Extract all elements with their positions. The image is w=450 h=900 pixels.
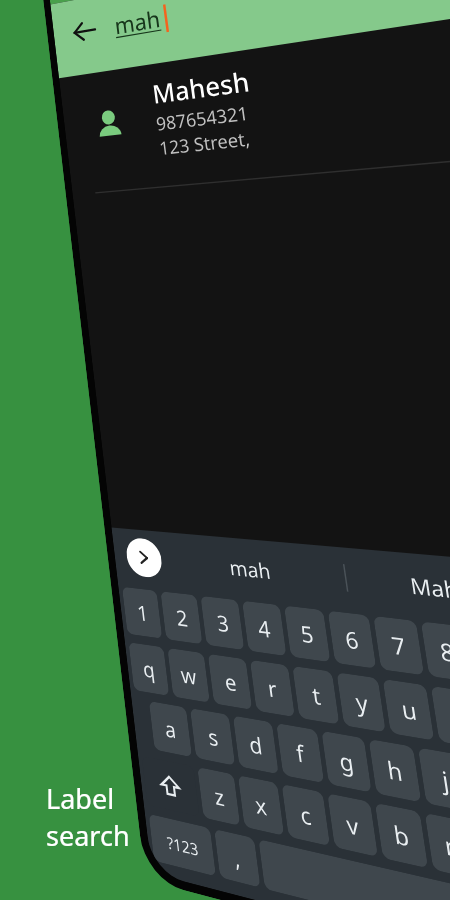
button[interactable]: d bbox=[233, 715, 279, 774]
button[interactable]: a bbox=[149, 701, 192, 757]
button[interactable]: e bbox=[208, 654, 252, 710]
button[interactable]: Space bbox=[258, 839, 450, 900]
button[interactable]: 6 bbox=[328, 611, 376, 669]
staticText: r bbox=[265, 672, 279, 704]
button[interactable]: 3 bbox=[200, 596, 244, 650]
button[interactable]: t bbox=[292, 666, 339, 725]
button[interactable]: x bbox=[238, 775, 284, 836]
staticText: 4 bbox=[256, 612, 272, 644]
button[interactable]: Expand suggestions bbox=[124, 537, 164, 579]
button[interactable]: 2 bbox=[160, 591, 202, 644]
staticText: a bbox=[163, 713, 178, 744]
button[interactable]: 5 bbox=[284, 605, 331, 662]
staticText: 1 bbox=[135, 598, 150, 627]
button[interactable]: i bbox=[431, 686, 450, 749]
staticText: search bbox=[46, 817, 130, 854]
button[interactable]: 7 bbox=[373, 616, 424, 675]
staticText: 3 bbox=[215, 607, 231, 638]
button[interactable]: w bbox=[167, 648, 210, 703]
staticText: u bbox=[398, 692, 419, 727]
staticText: s bbox=[206, 721, 220, 753]
staticText: w bbox=[179, 659, 198, 691]
staticText: j bbox=[439, 762, 450, 797]
staticText: f bbox=[293, 736, 306, 769]
button[interactable]: v bbox=[327, 793, 378, 857]
button[interactable]: h bbox=[368, 739, 421, 802]
button[interactable]: , bbox=[214, 829, 261, 888]
staticText: b bbox=[391, 817, 412, 853]
staticText: 8 bbox=[437, 634, 450, 669]
button[interactable]: r bbox=[250, 660, 295, 717]
button[interactable]: b bbox=[375, 803, 428, 868]
staticText: 7 bbox=[389, 628, 408, 662]
button[interactable]: Shift bbox=[142, 756, 199, 817]
button[interactable]: 8 bbox=[421, 621, 450, 682]
button[interactable]: Back bbox=[50, 0, 119, 69]
staticText: 5 bbox=[298, 618, 316, 650]
staticText: q bbox=[141, 654, 157, 684]
staticText: g bbox=[336, 744, 356, 779]
button[interactable]: y bbox=[336, 672, 386, 733]
staticText: 987654321 bbox=[155, 100, 251, 136]
button[interactable]: j bbox=[418, 747, 450, 813]
staticText: , bbox=[232, 842, 242, 874]
button[interactable]: n bbox=[425, 813, 450, 880]
staticText: d bbox=[246, 728, 264, 761]
button[interactable]: u bbox=[382, 679, 434, 741]
button[interactable]: z bbox=[197, 767, 240, 826]
button[interactable]: 4 bbox=[242, 601, 287, 656]
button[interactable]: Mahesh bbox=[59, 16, 450, 196]
staticText: n bbox=[441, 827, 450, 865]
staticText: Mahesh bbox=[408, 570, 450, 610]
staticText: t bbox=[310, 679, 323, 711]
staticText: 6 bbox=[343, 623, 361, 656]
staticText: 123 Street, bbox=[158, 125, 252, 160]
staticText: z bbox=[212, 780, 227, 813]
staticText: mah bbox=[228, 553, 273, 585]
button[interactable]: g bbox=[321, 731, 372, 793]
button[interactable]: s bbox=[190, 708, 235, 766]
button[interactable]: f bbox=[276, 723, 324, 783]
button[interactable]: ?123 bbox=[149, 814, 216, 877]
staticText: e bbox=[222, 666, 238, 697]
staticText: Mahesh bbox=[150, 63, 253, 111]
staticText: h bbox=[384, 753, 405, 788]
button[interactable]: q bbox=[128, 642, 169, 696]
staticText: v bbox=[344, 807, 361, 842]
staticText: x bbox=[253, 789, 268, 822]
staticText: c bbox=[297, 798, 314, 832]
button[interactable]: 1 bbox=[122, 587, 162, 639]
staticText: 2 bbox=[174, 602, 189, 633]
staticText: Label bbox=[46, 780, 115, 817]
staticText: ?123 bbox=[165, 831, 200, 861]
staticText: y bbox=[353, 685, 370, 719]
staticText: mah bbox=[113, 3, 163, 42]
button[interactable]: c bbox=[281, 784, 330, 846]
